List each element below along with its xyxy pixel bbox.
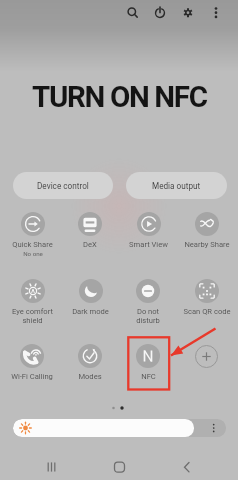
- staticText: Media output: [152, 181, 201, 191]
- staticText: DeX: [83, 240, 97, 249]
- button[interactable]: Recents: [36, 452, 68, 480]
- staticText: Do not disturb: [136, 307, 160, 325]
- button[interactable]: Do not disturb: [119, 279, 177, 327]
- button[interactable]: Settings: [178, 2, 198, 22]
- staticText: TURN ON NFC: [32, 80, 207, 115]
- staticText: NFC: [141, 372, 156, 381]
- staticText: No one: [23, 250, 43, 257]
- button[interactable]: Modes: [61, 344, 119, 392]
- staticText: Device control: [37, 181, 89, 191]
- button[interactable]: DeX: [61, 212, 119, 260]
- staticText: Wi-Fi Calling: [11, 372, 53, 381]
- button[interactable]: Nearby Share: [178, 212, 236, 260]
- button[interactable]: Device control: [13, 172, 113, 199]
- button[interactable]: Eye comfort shield: [3, 279, 61, 327]
- staticText: Eye comfort shield: [12, 307, 53, 325]
- staticText: Modes: [78, 372, 102, 381]
- button[interactable]: Scan QR code: [178, 279, 236, 327]
- button[interactable]: Search: [122, 2, 142, 22]
- button[interactable]: Back: [171, 452, 203, 480]
- staticText: Quick Share: [12, 240, 53, 249]
- button[interactable]: Quick Share: [3, 212, 61, 260]
- staticText: Dark mode: [72, 307, 109, 316]
- button[interactable]: Brightness: [13, 419, 226, 437]
- button[interactable]: More options: [206, 2, 226, 22]
- staticText: Smart View: [129, 240, 168, 249]
- button[interactable]: Dark mode: [61, 279, 119, 327]
- button[interactable]: NFC: [119, 344, 177, 392]
- button[interactable]: Add button: [194, 345, 219, 368]
- staticText: Scan QR code: [183, 307, 231, 316]
- button[interactable]: Smart View: [119, 212, 177, 260]
- button[interactable]: Media output: [126, 172, 227, 199]
- button[interactable]: Home: [104, 452, 136, 480]
- button[interactable]: Wi-Fi Calling: [3, 344, 61, 392]
- staticText: Nearby Share: [184, 240, 230, 249]
- button[interactable]: Power: [150, 2, 170, 22]
